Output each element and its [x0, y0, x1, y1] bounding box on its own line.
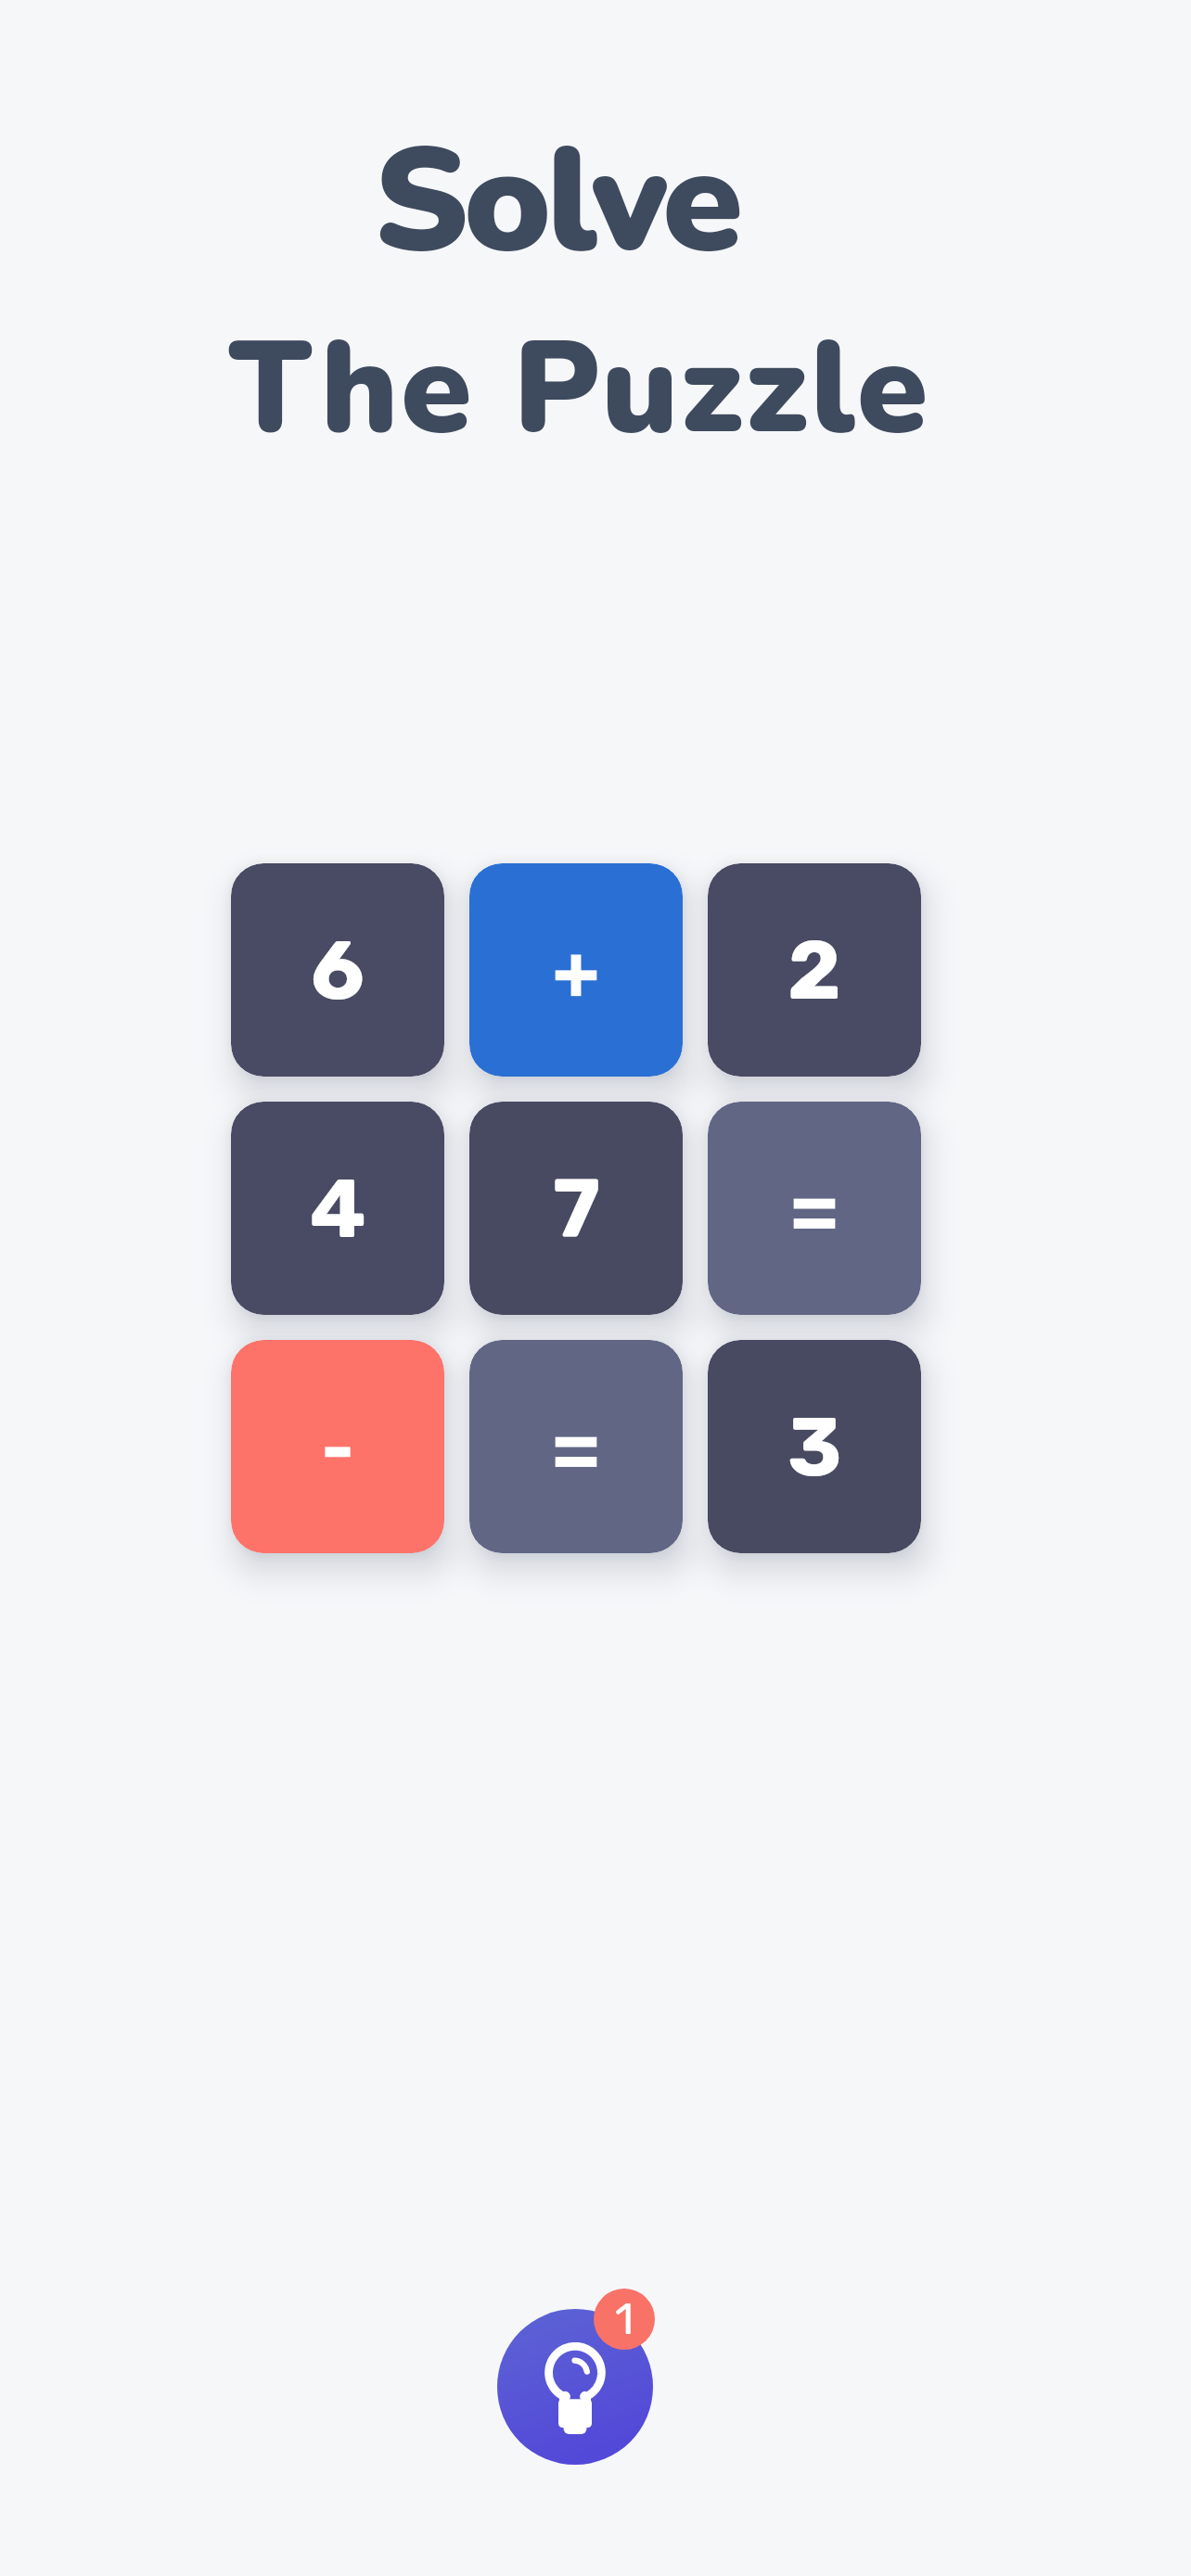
button[interactable]: Show a hint: [497, 2309, 653, 2465]
button[interactable]: 2: [708, 863, 921, 1077]
staticText: The Puzzle: [229, 301, 930, 476]
button[interactable]: Minus: [231, 1340, 444, 1553]
button[interactable]: Equals: [708, 1102, 921, 1315]
staticText: 1: [615, 2293, 634, 2345]
staticText: Solve: [374, 102, 738, 300]
button[interactable]: Equals: [469, 1340, 683, 1553]
button[interactable]: 4: [231, 1102, 444, 1315]
button[interactable]: 3: [708, 1340, 921, 1553]
staticText: 4: [310, 1160, 366, 1257]
staticText: 6: [311, 922, 365, 1019]
button[interactable]: Plus: [469, 863, 683, 1077]
staticText: 2: [788, 922, 841, 1019]
staticText: 7: [553, 1160, 600, 1257]
button[interactable]: 6: [231, 863, 444, 1077]
staticText: 3: [788, 1398, 842, 1496]
button[interactable]: 7: [469, 1102, 683, 1315]
